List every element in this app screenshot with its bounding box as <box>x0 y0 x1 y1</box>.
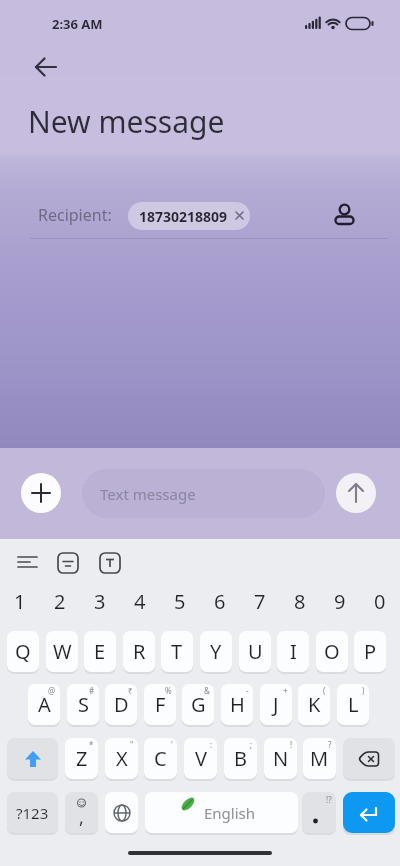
staticText: N <box>273 745 289 772</box>
staticText: L <box>348 691 359 718</box>
staticText: ( <box>323 685 326 696</box>
button[interactable]: C <box>144 738 177 779</box>
button[interactable]: B <box>224 738 257 779</box>
button[interactable]: O <box>316 631 348 672</box>
button[interactable]: 4 <box>120 581 160 621</box>
button[interactable] <box>21 473 61 513</box>
button[interactable]: R <box>123 631 155 672</box>
button[interactable]: L <box>337 684 369 725</box>
staticText: - <box>246 685 249 696</box>
staticText: New message <box>28 101 225 142</box>
staticText: Z <box>76 745 88 772</box>
button[interactable]: M <box>303 738 336 779</box>
staticText: & <box>204 685 210 696</box>
button[interactable]: N <box>264 738 297 779</box>
button[interactable]: K <box>298 684 330 725</box>
button[interactable]: V <box>184 738 217 779</box>
staticText: D <box>114 691 129 718</box>
button[interactable]: E <box>84 631 116 672</box>
staticText: S <box>78 691 89 718</box>
button[interactable]: 8 <box>280 581 320 621</box>
staticText: @ <box>48 685 56 696</box>
button[interactable]: ?123 <box>7 792 58 833</box>
button[interactable]: Y <box>200 631 232 672</box>
button[interactable]: G <box>182 684 214 725</box>
button[interactable]: H <box>221 684 253 725</box>
staticText: : <box>210 739 213 750</box>
button[interactable]: D <box>105 684 137 725</box>
staticText: P <box>364 638 377 665</box>
staticText: ₹ <box>128 685 133 696</box>
button[interactable]: S <box>67 684 99 725</box>
staticText: R <box>133 638 146 665</box>
staticText: J <box>273 691 279 718</box>
button[interactable]: 7 <box>240 581 280 621</box>
staticText: I <box>290 638 297 665</box>
button[interactable]: 3 <box>80 581 120 621</box>
button[interactable]: English <box>145 792 298 833</box>
staticText: 9 <box>334 588 346 615</box>
staticText: A <box>38 691 51 718</box>
button[interactable] <box>98 551 122 575</box>
staticText: , <box>79 805 84 830</box>
button[interactable]: X <box>105 738 138 779</box>
button[interactable]: T <box>161 631 193 672</box>
staticText: " <box>130 739 134 750</box>
staticText: ?123 <box>16 803 49 823</box>
button[interactable] <box>343 738 395 779</box>
button[interactable]: 0 <box>360 581 400 621</box>
button[interactable]: 6 <box>200 581 240 621</box>
button[interactable]: 1 <box>0 581 40 621</box>
staticText: + <box>283 685 288 696</box>
button[interactable]: Q <box>7 631 39 672</box>
button[interactable] <box>336 473 376 513</box>
staticText: ? <box>328 739 332 750</box>
button[interactable]: U <box>239 631 271 672</box>
button[interactable]: 18730218809 <box>128 202 250 230</box>
button[interactable]: W <box>46 631 78 672</box>
button[interactable]: , <box>65 792 98 833</box>
staticText: 18730218809 <box>139 207 228 226</box>
button[interactable]: Z <box>65 738 98 779</box>
staticText: English <box>204 803 256 823</box>
staticText: M <box>310 745 329 772</box>
staticText: G <box>191 691 206 718</box>
button[interactable]: I <box>277 631 309 672</box>
button[interactable]: A <box>28 684 60 725</box>
button[interactable] <box>7 738 58 779</box>
button[interactable] <box>343 792 395 833</box>
button[interactable]: 5 <box>160 581 200 621</box>
staticText: Recipient: <box>38 204 112 226</box>
staticText: 2:36 AM <box>52 15 103 33</box>
button[interactable]: 2 <box>40 581 80 621</box>
staticText: 5 <box>174 588 186 615</box>
staticText: B <box>234 745 247 772</box>
staticText: W <box>53 638 72 665</box>
button[interactable] <box>56 551 80 575</box>
button[interactable]: Text message <box>82 469 325 518</box>
button[interactable]: !? <box>302 792 336 833</box>
button[interactable] <box>105 792 138 833</box>
staticText: 0 <box>374 588 386 615</box>
button[interactable]: J <box>260 684 292 725</box>
staticText: Text message <box>100 484 196 504</box>
staticText: 6 <box>214 588 226 615</box>
staticText: 7 <box>254 588 266 615</box>
button[interactable] <box>330 198 360 228</box>
staticText: O <box>324 638 340 665</box>
staticText: ! <box>290 739 293 750</box>
staticText: F <box>155 691 166 718</box>
staticText: !? <box>326 794 332 805</box>
staticText: % <box>165 685 172 696</box>
button[interactable]: 9 <box>320 581 360 621</box>
staticText: ) <box>362 685 365 696</box>
staticText: T <box>171 638 183 665</box>
button[interactable]: P <box>354 631 386 672</box>
staticText: E <box>94 638 106 665</box>
staticText: ; <box>250 739 253 750</box>
button[interactable] <box>14 550 42 574</box>
staticText: 3 <box>94 588 106 615</box>
button[interactable]: F <box>144 684 176 725</box>
button[interactable] <box>26 47 66 87</box>
staticText: Y <box>210 638 222 665</box>
